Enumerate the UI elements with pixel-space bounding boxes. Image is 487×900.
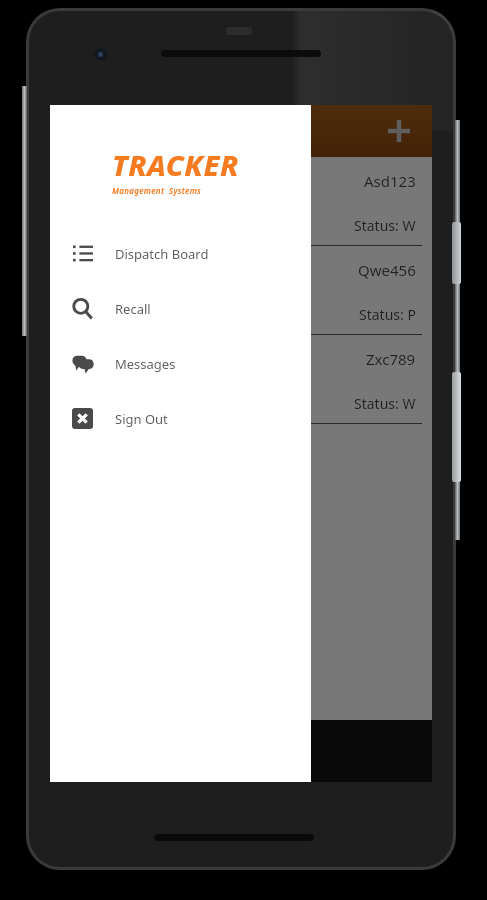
staticText: Status: W — [354, 216, 416, 235]
staticText: 28 — [66, 261, 83, 280]
button[interactable]: 31 — [50, 157, 432, 246]
staticText: Asd123 — [364, 171, 416, 191]
button[interactable]: Messages — [50, 336, 311, 391]
staticText: Sign Out — [115, 410, 168, 428]
staticText: Status: W — [354, 394, 416, 413]
staticText: Dispatch Board — [115, 245, 209, 263]
button[interactable]: Recall — [50, 281, 311, 336]
button[interactable]: Sign Out — [50, 391, 311, 446]
staticText: Zxc789 — [366, 349, 416, 369]
staticText: Qwe456 — [358, 260, 416, 280]
staticText: Status: P — [359, 305, 416, 324]
button[interactable]: Add call — [380, 112, 418, 150]
staticText: 14 — [66, 350, 83, 369]
staticText: Messages — [115, 355, 176, 373]
staticText: Management Systems — [112, 185, 202, 196]
button[interactable]: 28 — [50, 246, 432, 335]
button[interactable]: 14 — [50, 335, 432, 424]
staticText: TRACKER — [112, 145, 239, 184]
button[interactable]: Dispatch Board — [50, 226, 311, 281]
staticText: Recall — [115, 300, 151, 318]
button[interactable]: Completed Calls — [50, 731, 432, 771]
